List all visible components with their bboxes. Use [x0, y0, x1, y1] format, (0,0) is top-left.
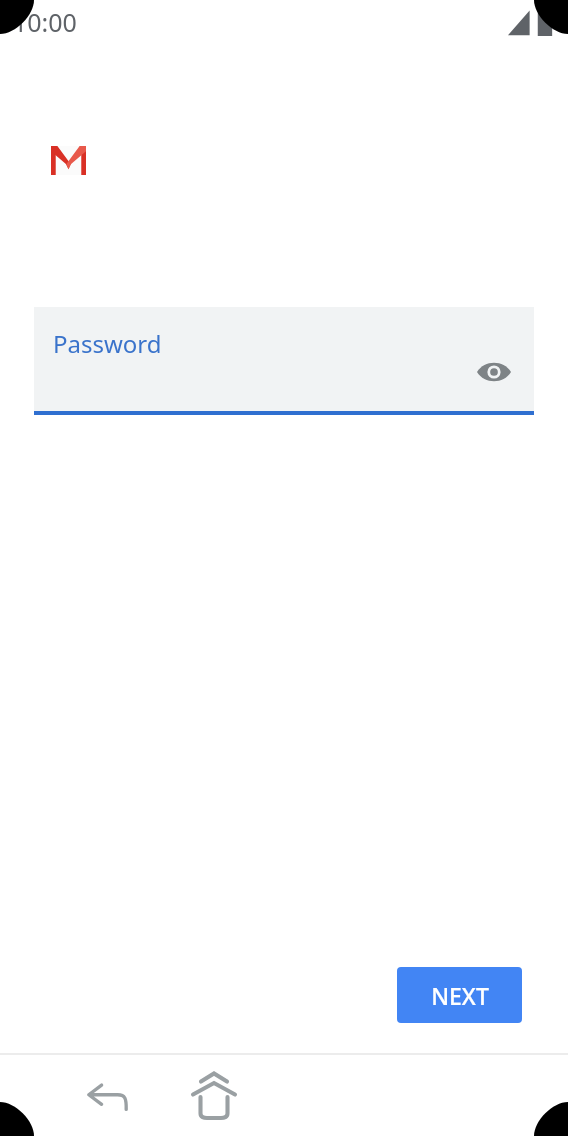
button[interactable]: Password: [34, 307, 534, 415]
button[interactable]: NEXT: [397, 967, 522, 1023]
staticText: Password: [53, 327, 162, 360]
button[interactable]: Home: [174, 1056, 254, 1136]
button[interactable]: Show password: [468, 346, 520, 398]
staticText: NEXT: [431, 980, 489, 1011]
staticText: 10:00: [13, 5, 77, 39]
button[interactable]: Back: [70, 1058, 146, 1134]
